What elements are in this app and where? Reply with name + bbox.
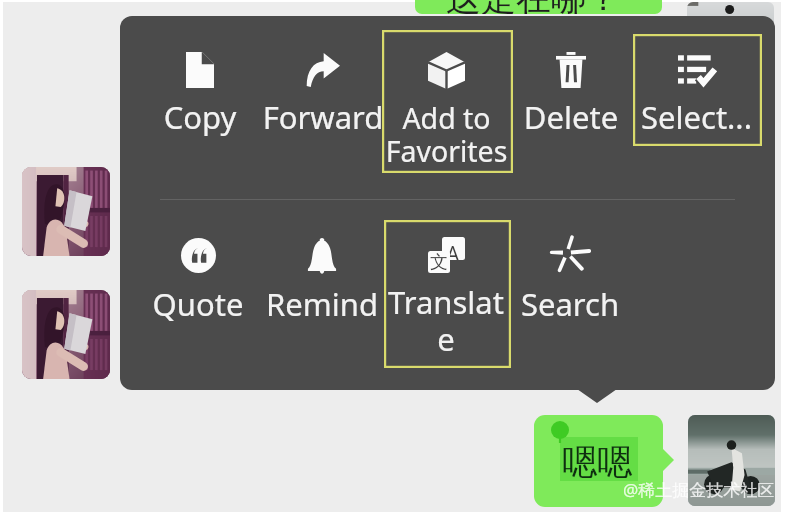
button[interactable]: Copy	[135, 40, 265, 167]
other: Translate	[428, 237, 465, 273]
staticText: Quote	[133, 283, 263, 325]
staticText: Add to Favorites	[374, 99, 519, 170]
staticText: Select...	[624, 96, 769, 138]
button[interactable]: Select	[624, 40, 769, 167]
staticText: Search	[505, 283, 635, 325]
button[interactable]: Translate	[383, 225, 509, 360]
other: Search	[552, 237, 588, 273]
staticText: 嗯嗯	[562, 440, 632, 484]
other: Quote	[181, 238, 216, 273]
button[interactable]: Search	[505, 225, 635, 354]
other: Forward	[306, 53, 340, 87]
other: Select	[678, 54, 716, 86]
other: Copy	[186, 52, 214, 88]
button[interactable]: Delete	[506, 40, 636, 167]
staticText: 这是在哪？	[446, 0, 621, 14]
staticText: 文	[430, 251, 448, 273]
button[interactable]: Quote	[133, 225, 263, 354]
other: Remind	[306, 237, 338, 274]
staticText: @稀土掘金技术社区	[623, 478, 775, 501]
staticText: Remind	[252, 283, 392, 325]
other: Add to Favorites	[428, 52, 465, 89]
staticText: Translat e	[383, 281, 509, 361]
button[interactable]: Remind	[252, 225, 392, 354]
staticText: A	[446, 240, 460, 260]
button[interactable]: Forward	[253, 40, 393, 167]
button[interactable]: Add to Favorites	[374, 40, 519, 167]
staticText: Forward	[253, 96, 393, 138]
staticText: Copy	[135, 96, 265, 138]
staticText: Delete	[506, 96, 636, 138]
other: Delete	[556, 52, 586, 88]
